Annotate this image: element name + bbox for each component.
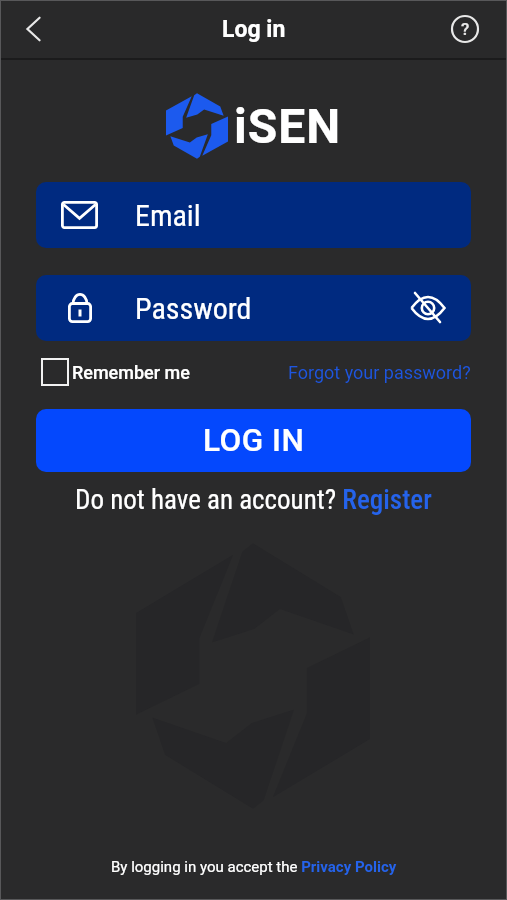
button[interactable]: Forgot your password? bbox=[288, 362, 471, 383]
staticText: Log in bbox=[222, 16, 286, 43]
button[interactable] bbox=[14, 10, 52, 48]
button[interactable]: Email bbox=[36, 182, 471, 248]
staticText: iSEN bbox=[234, 98, 342, 154]
button[interactable]: By logging in you accept the Privacy Pol… bbox=[111, 858, 397, 876]
staticText: Email bbox=[135, 198, 201, 233]
button[interactable] bbox=[406, 286, 450, 330]
staticText: LOG IN bbox=[203, 422, 305, 459]
staticText: Remember me bbox=[72, 362, 190, 383]
button[interactable] bbox=[41, 358, 69, 386]
button[interactable]: Do not have an account? Register bbox=[75, 484, 432, 516]
button[interactable]: ? bbox=[447, 11, 483, 47]
staticText: ? bbox=[461, 19, 470, 39]
staticText: Password bbox=[135, 291, 252, 326]
button[interactable]: Password bbox=[36, 275, 471, 341]
button[interactable]: LOG IN bbox=[36, 409, 471, 472]
